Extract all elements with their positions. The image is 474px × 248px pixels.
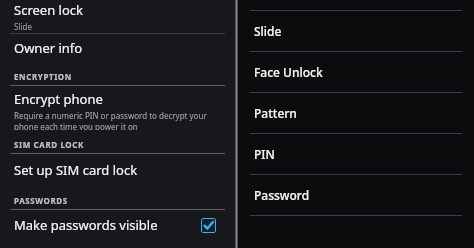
- button[interactable]: Encrypt phone: [0, 86, 235, 130]
- button[interactable]: Owner info: [0, 34, 235, 62]
- staticText: SIM CARD LOCK: [14, 139, 84, 150]
- staticText: phone each time you power it on: [14, 121, 138, 130]
- button[interactable]: Make passwords visible checkbox: [201, 218, 216, 233]
- staticText: ENCRYPTION: [14, 71, 72, 82]
- staticText: Screen lock: [14, 1, 83, 19]
- button[interactable]: Face Unlock: [238, 52, 474, 92]
- button[interactable]: Make passwords visible: [0, 210, 235, 240]
- staticText: Slide: [254, 23, 282, 39]
- staticText: Face Unlock: [254, 64, 323, 80]
- button[interactable]: Password: [238, 175, 474, 215]
- button[interactable]: Set up SIM card lock: [0, 154, 235, 186]
- staticText: PASSWORDS: [14, 195, 68, 206]
- staticText: Require a numeric PIN or password to dec…: [14, 110, 207, 121]
- staticText: Set up SIM card lock: [14, 161, 138, 179]
- staticText: Password: [254, 187, 310, 203]
- staticText: Make passwords visible: [14, 216, 158, 234]
- staticText: Slide: [14, 21, 32, 32]
- staticText: Encrypt phone: [14, 90, 103, 108]
- button[interactable]: Pattern: [238, 93, 474, 133]
- staticText: PIN: [254, 146, 275, 162]
- button[interactable]: Screen lock: [0, 0, 235, 33]
- staticText: Owner info: [14, 39, 83, 57]
- button[interactable]: PIN: [238, 134, 474, 174]
- staticText: Pattern: [254, 105, 297, 121]
- button[interactable]: Slide: [238, 11, 474, 51]
